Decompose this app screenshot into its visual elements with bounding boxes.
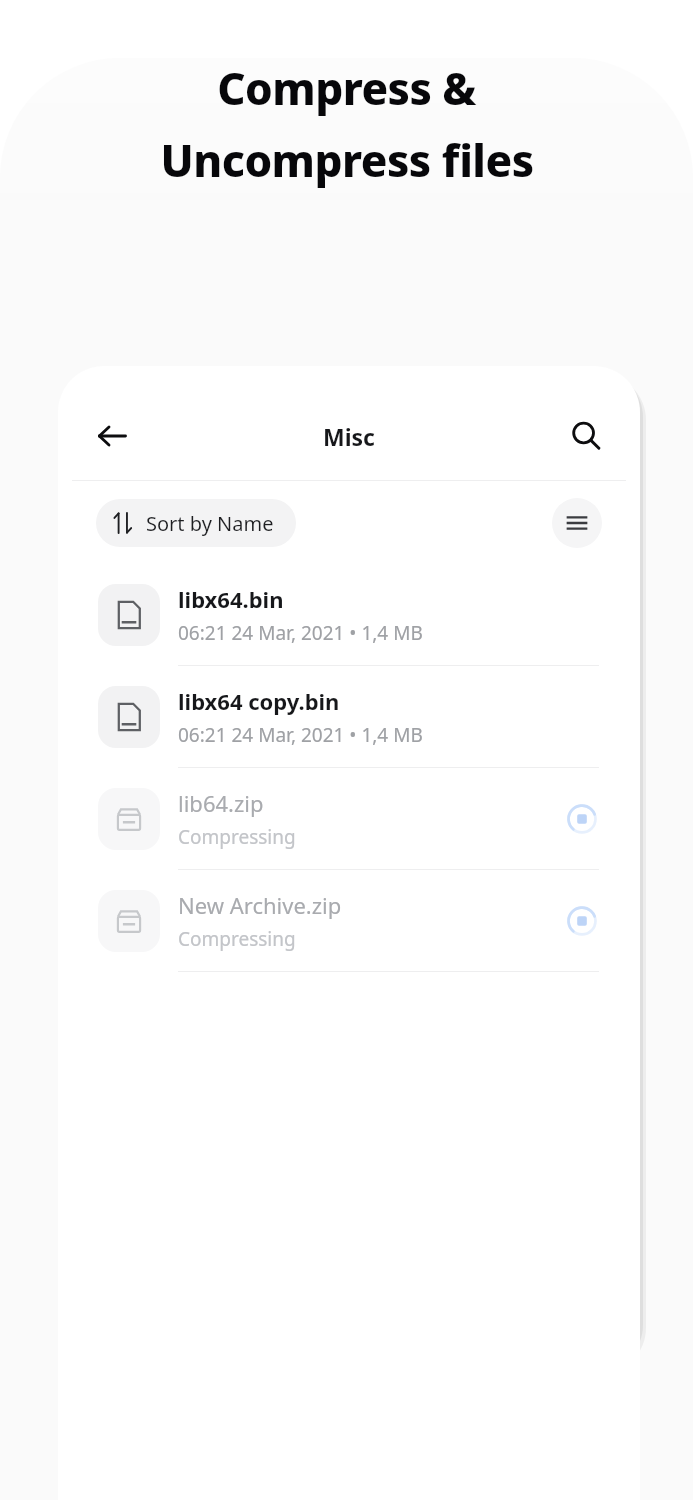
button[interactable]: Stop compressing — [560, 797, 604, 841]
staticText: 06:21 24 Mar, 2021 • 1,4 MB — [178, 722, 423, 748]
staticText: Compressing — [178, 926, 296, 952]
button[interactable]: lib64.zip — [72, 768, 626, 869]
button[interactable]: Back — [84, 408, 140, 464]
staticText: Compress & — [217, 58, 476, 118]
staticText: New Archive.zip — [178, 890, 342, 920]
button[interactable]: Stop compressing — [560, 899, 604, 943]
button[interactable]: Search — [558, 408, 614, 464]
staticText: Sort by Name — [146, 510, 274, 537]
button[interactable]: libx64.bin — [72, 564, 626, 665]
button[interactable]: Sort by Name — [96, 499, 296, 547]
staticText: Compressing — [178, 824, 296, 850]
button[interactable]: List options — [552, 498, 602, 548]
button[interactable]: New Archive.zip — [72, 870, 626, 971]
button[interactable]: libx64 copy.bin — [72, 666, 626, 767]
staticText: libx64.bin — [178, 584, 284, 614]
staticText: Misc — [323, 421, 375, 452]
staticText: lib64.zip — [178, 788, 264, 818]
staticText: libx64 copy.bin — [178, 686, 340, 716]
staticText: Uncompress files — [160, 130, 534, 190]
staticText: 06:21 24 Mar, 2021 • 1,4 MB — [178, 620, 423, 646]
